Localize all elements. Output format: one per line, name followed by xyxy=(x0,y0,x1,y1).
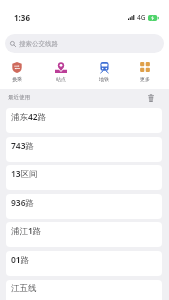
button[interactable]: 浦江1路 xyxy=(6,222,162,247)
button[interactable]: 地铁 xyxy=(88,61,120,81)
button[interactable]: 搜索公交线路 xyxy=(5,34,164,53)
staticText: 站点 xyxy=(56,76,66,82)
staticText: 1:36 xyxy=(14,12,30,23)
staticText: 01路 xyxy=(11,254,30,266)
staticText: 换乘 xyxy=(12,76,22,82)
staticText: 江五线 xyxy=(11,283,37,294)
staticText: 936路 xyxy=(11,197,35,209)
staticText: 743路 xyxy=(11,140,35,152)
staticText: 搜索公交线路 xyxy=(19,40,58,48)
staticText: 最近使用 xyxy=(8,94,30,101)
button[interactable]: 936路 xyxy=(6,194,162,219)
staticText: 13区间 xyxy=(11,168,38,180)
button[interactable]: 江五线 xyxy=(6,280,162,300)
button[interactable]: 更多 xyxy=(129,61,161,81)
staticText: 浦东42路 xyxy=(11,111,47,123)
button[interactable]: 743路 xyxy=(6,137,162,162)
staticText: 浦江1路 xyxy=(11,225,42,237)
button[interactable]: 13区间 xyxy=(6,165,162,190)
staticText: 地铁 xyxy=(99,76,109,82)
button[interactable]: Clear history xyxy=(146,93,155,102)
staticText: 更多 xyxy=(140,76,150,82)
button[interactable]: 站点 xyxy=(45,61,77,81)
button[interactable]: 浦东42路 xyxy=(6,108,162,133)
button[interactable]: 换乘 xyxy=(1,61,33,81)
staticText: 4G xyxy=(137,13,146,22)
button[interactable]: 01路 xyxy=(6,251,162,276)
